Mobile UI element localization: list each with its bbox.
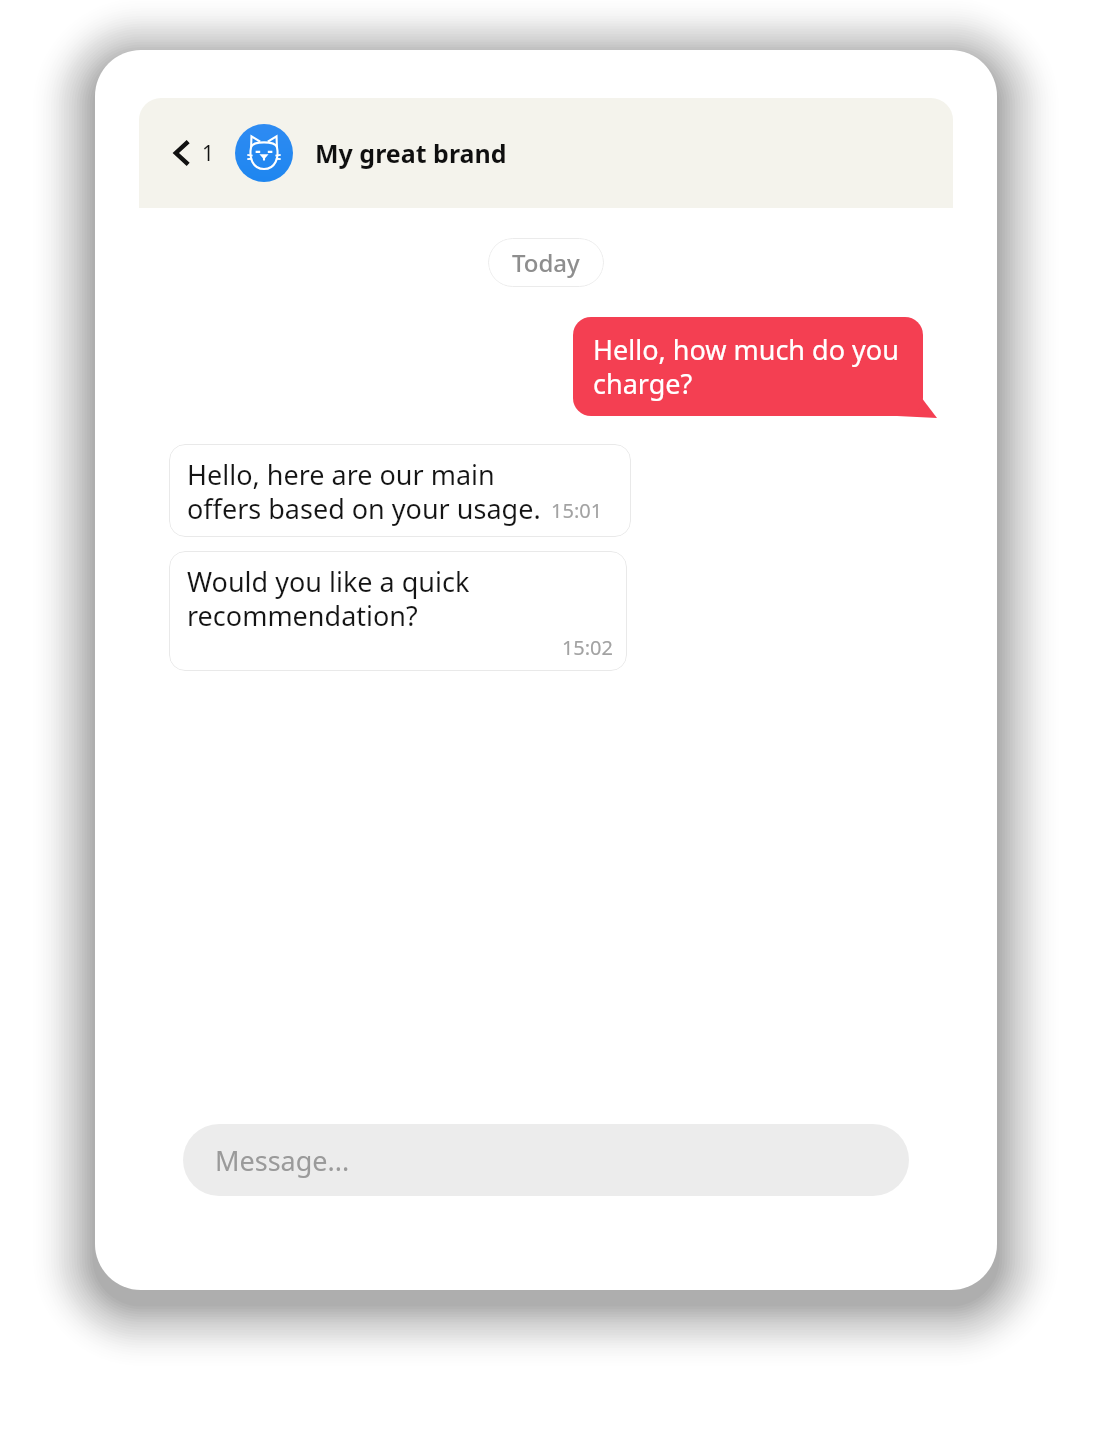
staticText: 15:02 bbox=[187, 634, 613, 661]
button[interactable]: Would you like a quick recommendation? bbox=[169, 551, 627, 671]
staticText: My great brand bbox=[315, 136, 507, 170]
button[interactable]: Today bbox=[488, 238, 604, 287]
button[interactable]: Hello, how much do you charge? bbox=[573, 317, 923, 416]
button[interactable]: Message... bbox=[183, 1124, 909, 1196]
staticText: Would you like a quick recommendation? bbox=[187, 563, 470, 634]
staticText: Today bbox=[512, 246, 580, 279]
staticText: Message... bbox=[215, 1142, 350, 1179]
button[interactable]: Brand avatar bbox=[235, 124, 293, 182]
staticText: Hello, how much do you charge? bbox=[593, 331, 903, 402]
staticText: Hello, here are our main offers based on… bbox=[187, 456, 541, 527]
staticText: 15:01 bbox=[551, 497, 603, 524]
staticText: 1 bbox=[202, 139, 215, 168]
button[interactable]: Back, 1 unread bbox=[167, 132, 219, 174]
button[interactable]: Hello, here are our main offers based on… bbox=[169, 444, 631, 537]
